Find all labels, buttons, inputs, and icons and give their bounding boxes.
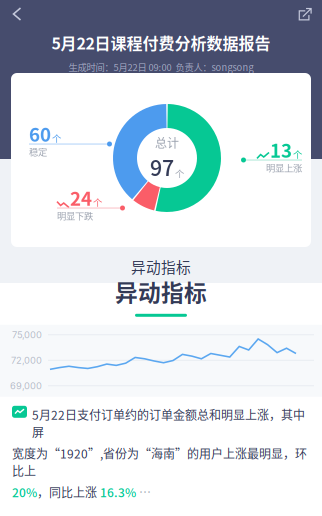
- staticText: 60: [29, 120, 51, 147]
- staticText: 24: [70, 184, 92, 211]
- staticText: 生成时间：5月22日 09:00 负责人：songsong: [68, 60, 253, 74]
- staticText: 明显下跌: [57, 209, 93, 222]
- staticText: 16.3%: [100, 483, 136, 501]
- staticText: …: [136, 483, 151, 501]
- staticText: 异动指标: [115, 275, 207, 308]
- staticText: 20%: [12, 483, 37, 501]
- staticText: 72,000: [11, 355, 42, 366]
- button[interactable]: Share: [288, 0, 322, 28]
- staticText: 个: [175, 167, 184, 180]
- staticText: 异动指标: [131, 256, 191, 277]
- staticText: 69,000: [10, 380, 42, 391]
- staticText: 稳定: [29, 145, 47, 158]
- staticText: 13: [270, 136, 292, 163]
- staticText: 5月22日支付订单约的订单金额总和明显上涨，其中屏: [32, 406, 305, 441]
- staticText: 5月22日课程付费分析数据报告: [51, 31, 270, 54]
- staticText: 97: [150, 151, 174, 182]
- staticText: 个: [93, 195, 102, 209]
- staticText: 个: [52, 131, 61, 145]
- staticText: 明显上涨: [266, 161, 302, 174]
- button[interactable]: 异动指标: [0, 250, 322, 283]
- button[interactable]: Back: [0, 0, 34, 28]
- staticText: 宽度为“1920”,省份为“海南”的用户上涨最明显，环比上: [12, 444, 307, 479]
- staticText: 个: [293, 147, 302, 161]
- staticText: ，同比上涨: [37, 483, 100, 501]
- staticText: 75,000: [12, 329, 42, 340]
- staticText: 总计: [155, 134, 179, 151]
